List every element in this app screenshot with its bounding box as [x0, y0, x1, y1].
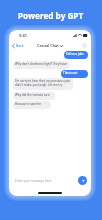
- staticText: Tell us a joke: [66, 52, 84, 56]
- staticText: Why don't skeletons fight? They have no …: [15, 62, 68, 66]
- staticText: I'm sorry to hear that, my previous joke…: [15, 79, 71, 87]
- button[interactable]: Send: [78, 176, 87, 185]
- button[interactable]: Profile: [82, 43, 87, 48]
- staticText: Why did the tomato turn red ?: [15, 93, 53, 97]
- staticText: Enter your message here: [15, 179, 52, 183]
- staticText: Powered by GPT: [18, 10, 84, 21]
- staticText: 9:41: [19, 33, 27, 38]
- button[interactable]: Enter your message here: [13, 175, 76, 186]
- staticText: Casual Chat: [37, 43, 59, 48]
- staticText: This is not funny: [63, 71, 86, 75]
- staticText: Back: [16, 43, 24, 48]
- button[interactable]: Back: [9, 41, 27, 50]
- staticText: Because it saw the salad!: [15, 102, 49, 106]
